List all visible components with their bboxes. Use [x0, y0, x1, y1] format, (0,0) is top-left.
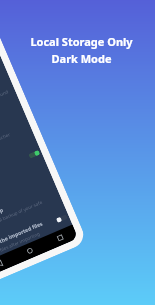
button[interactable]: Back: [0, 250, 18, 277]
staticText: Dark Mode: [51, 51, 112, 66]
button[interactable]: Block screenshots: [0, 139, 46, 202]
button[interactable]: Use biometric unlock: [0, 42, 5, 105]
staticText: Lock when the app goes to background: [0, 88, 10, 127]
staticText: Local Storage Only: [30, 34, 133, 49]
button[interactable]: Delete the imported files: [0, 203, 74, 266]
staticText: Delete files after importing: [0, 230, 41, 259]
button[interactable]: Auto lock: [0, 72, 17, 135]
staticText: Local backup: [0, 206, 4, 226]
staticText: Create a local backup of your safe: [0, 199, 43, 233]
button[interactable]: Recents: [42, 224, 78, 251]
button[interactable]: Home: [12, 237, 48, 264]
button[interactable]: Toggle: [28, 149, 41, 160]
staticText: Blur the preview in task switcher: [0, 131, 11, 164]
button[interactable]: Local backup: [0, 177, 63, 240]
button[interactable]: Hide in recents: [0, 109, 33, 171]
staticText: Delete the imported files: [0, 219, 44, 251]
button[interactable]: Toggle: [55, 213, 68, 224]
